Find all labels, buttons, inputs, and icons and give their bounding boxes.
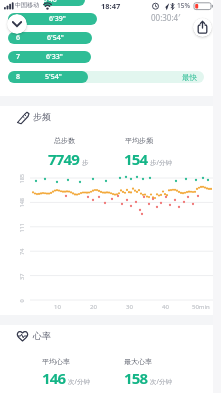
button[interactable]: 6'39" [8, 13, 97, 25]
staticText: 6'33" [46, 52, 63, 62]
staticText: 步/分钟 [150, 158, 172, 167]
staticText: 18:47 [101, 1, 121, 11]
staticText: 7 [16, 52, 21, 62]
staticText: 步频 [33, 111, 51, 122]
staticText: 总步数 [54, 136, 75, 145]
staticText: 平均心率 [42, 357, 70, 366]
staticText: 111 [17, 222, 24, 232]
staticText: 5'54" [45, 72, 62, 82]
staticText: 185 [17, 173, 24, 183]
staticText: 0 [17, 298, 24, 302]
button[interactable]: 6'33" [8, 51, 91, 63]
staticText: 6'46" [43, 0, 60, 5]
staticText: 40 [162, 303, 169, 311]
staticText: 次/分钟 [150, 377, 172, 386]
staticText: 平均步频 [125, 136, 153, 145]
staticText: 50min [192, 303, 210, 311]
staticText: 6 [16, 33, 21, 43]
staticText: 15% [177, 1, 190, 10]
staticText: 146 [42, 368, 66, 388]
staticText: 步 [82, 159, 89, 167]
staticText: 中国移动 [15, 1, 39, 9]
staticText: 74 [18, 248, 25, 255]
staticText: 4 [16, 0, 21, 5]
staticText: 8 [16, 72, 21, 82]
staticText: 154 [124, 149, 148, 169]
button[interactable]: 最快 [8, 71, 204, 83]
button[interactable] [193, 18, 212, 37]
staticText: 10 [54, 303, 61, 311]
staticText: 次/分钟 [68, 377, 90, 386]
staticText: 148 [17, 197, 24, 207]
staticText: 5 [16, 14, 21, 24]
staticText: 37 [18, 273, 25, 280]
staticText: 最大心率 [124, 357, 152, 366]
staticText: 7749 [48, 149, 80, 169]
button[interactable]: 6'46" [8, 0, 85, 6]
button[interactable] [7, 14, 27, 34]
staticText: 30 [126, 303, 133, 311]
button[interactable]: 6'54" [8, 32, 92, 44]
staticText: 158 [124, 368, 148, 388]
staticText: 心率 [33, 330, 51, 341]
staticText: 20 [90, 303, 97, 311]
staticText: 最快 [182, 73, 197, 82]
staticText: 6'54" [47, 33, 64, 43]
staticText: 00:30:4′ [151, 12, 181, 23]
staticText: 6'39" [49, 14, 66, 24]
